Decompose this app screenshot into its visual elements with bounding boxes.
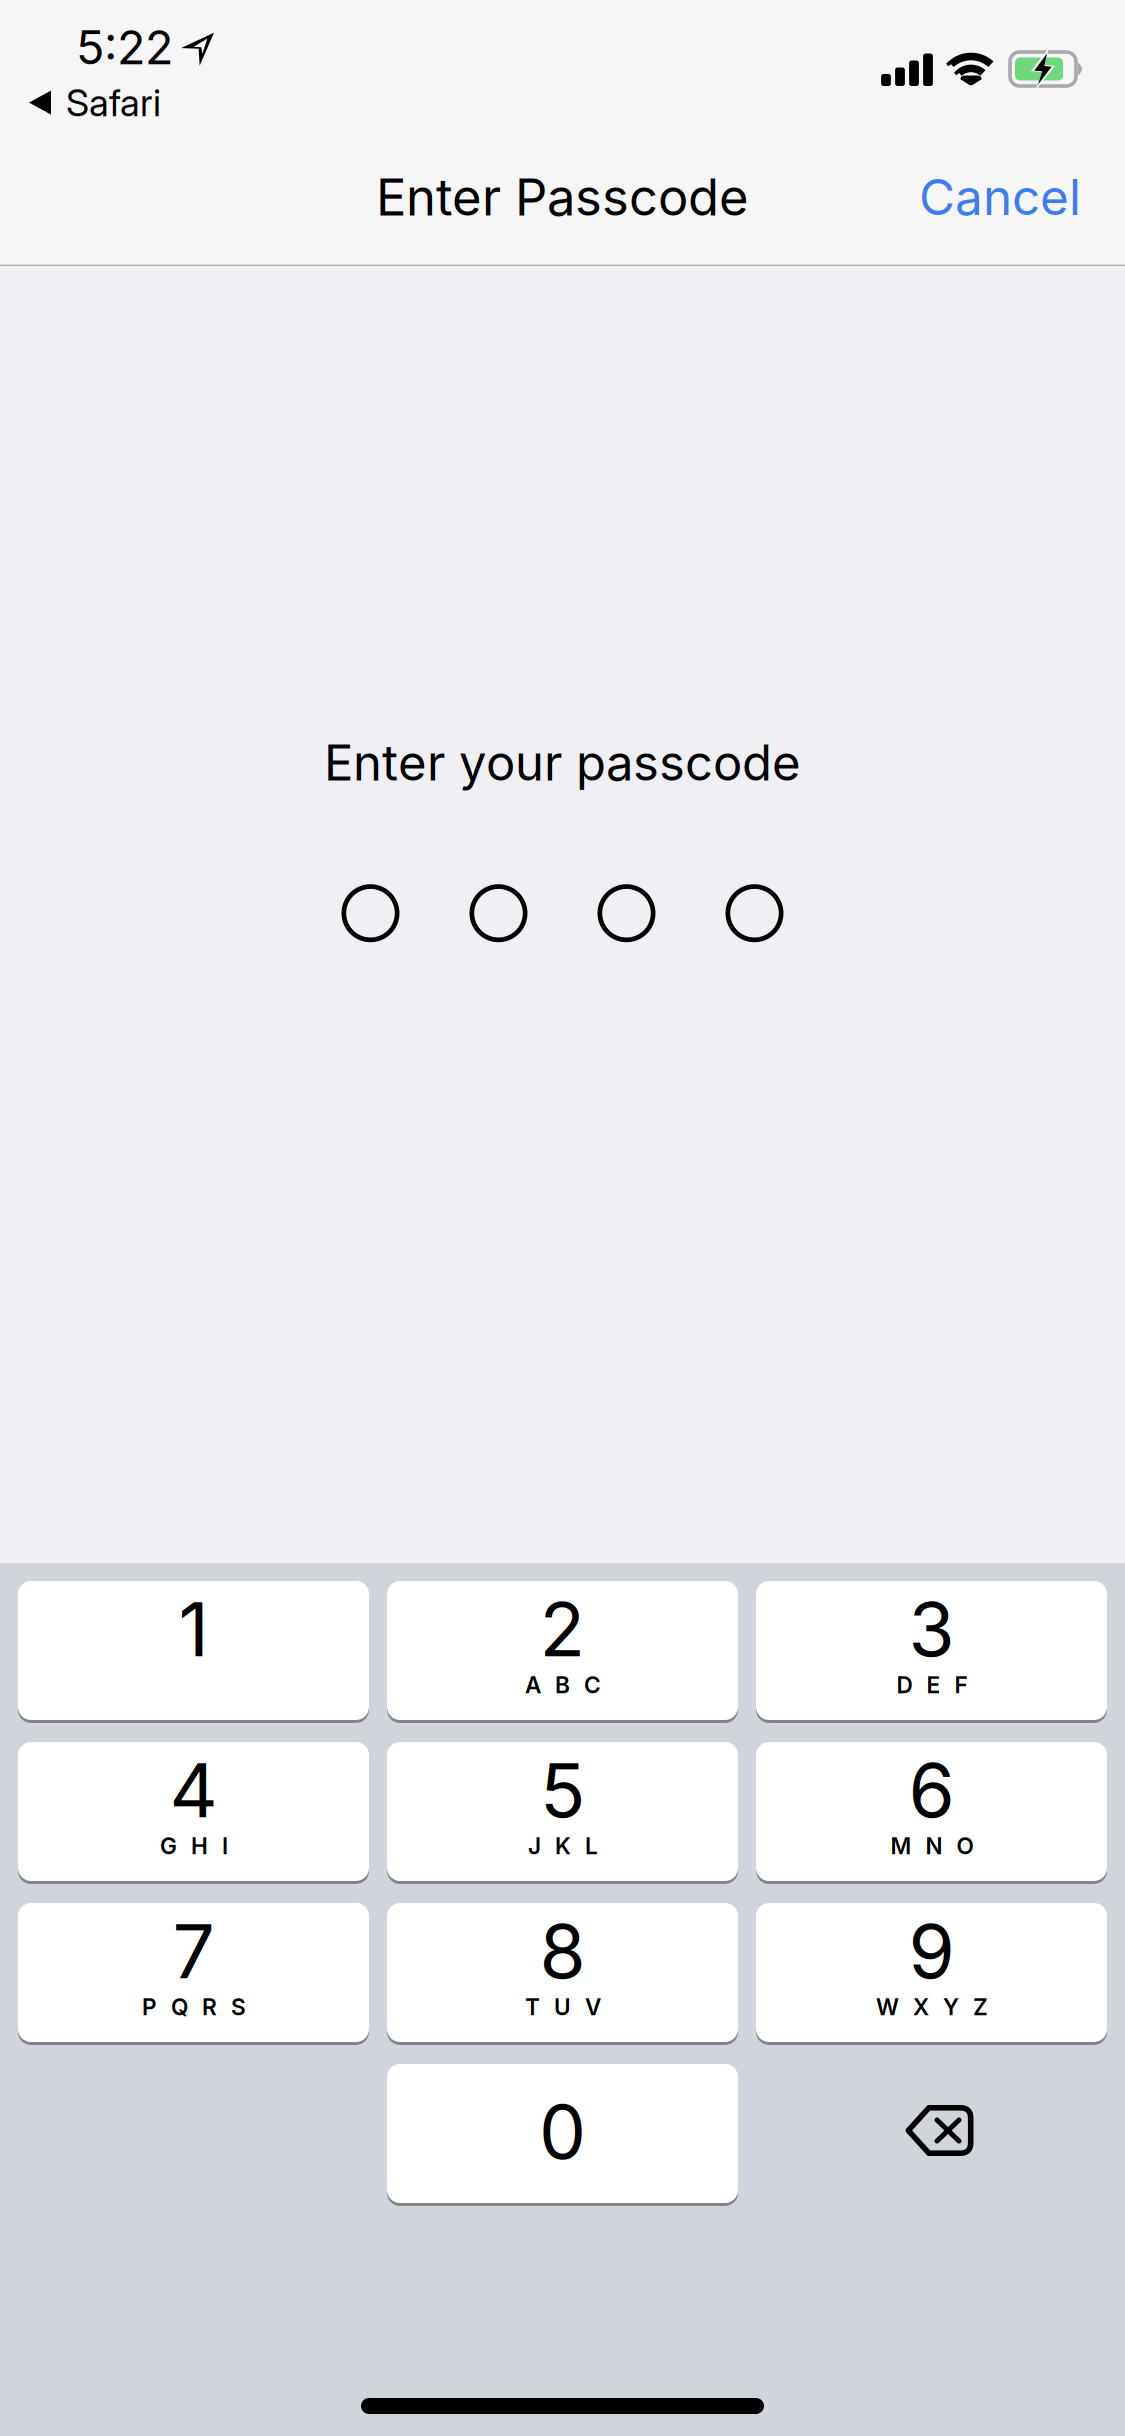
staticText: 9: [908, 1906, 954, 1996]
staticText: 5: [540, 1745, 585, 1835]
staticText: 4: [169, 1745, 217, 1835]
staticText: ABC: [525, 1671, 601, 1699]
button[interactable]: Safari: [0, 74, 179, 131]
button[interactable]: 7: [18, 1903, 369, 2042]
staticText: Safari: [66, 80, 161, 125]
staticText: 0: [539, 2086, 586, 2177]
staticText: 5:22: [76, 19, 173, 75]
button[interactable]: 3: [756, 1581, 1107, 1720]
staticText: Enter Passcode: [376, 166, 749, 228]
staticText: 1: [178, 1584, 208, 1674]
staticText: 8: [539, 1906, 585, 1996]
button[interactable]: 9: [756, 1903, 1107, 2042]
staticText: WXYZ: [876, 1993, 988, 2021]
staticText: Cancel: [919, 167, 1081, 227]
staticText: 7: [172, 1906, 214, 1996]
staticText: GHI: [160, 1832, 228, 1860]
button[interactable]: 6: [756, 1742, 1107, 1881]
staticText: 3: [908, 1584, 954, 1674]
button[interactable]: 8: [387, 1903, 738, 2042]
staticText: MNO: [890, 1832, 973, 1860]
button[interactable]: 4: [18, 1742, 369, 1881]
button[interactable]: Delete: [756, 2064, 1107, 2203]
staticText: Enter your passcode: [324, 733, 801, 792]
staticText: JKL: [528, 1832, 598, 1860]
button[interactable]: 5: [387, 1742, 738, 1881]
button[interactable]: Cancel: [893, 149, 1125, 245]
staticText: PQRS: [142, 1993, 246, 2021]
staticText: 2: [539, 1584, 585, 1674]
button[interactable]: 0: [387, 2064, 738, 2203]
staticText: DEF: [896, 1671, 967, 1699]
staticText: TUV: [525, 1993, 601, 2021]
button[interactable]: 2: [387, 1581, 738, 1720]
staticText: 6: [908, 1745, 954, 1835]
button[interactable]: 1: [18, 1581, 369, 1720]
